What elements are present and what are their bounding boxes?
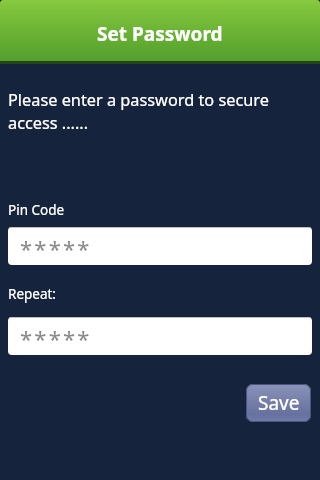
staticText: Set Password	[97, 21, 223, 47]
staticText: Save	[258, 390, 300, 416]
button[interactable]: *****	[8, 227, 312, 265]
staticText: Please enter a password to secure access…	[8, 89, 269, 134]
staticText: *****	[20, 323, 92, 353]
staticText: Pin Code	[8, 201, 65, 219]
button[interactable]: *****	[8, 317, 312, 355]
staticText: Repeat:	[8, 285, 56, 303]
staticText: *****	[20, 233, 92, 263]
button[interactable]: Save	[246, 384, 311, 422]
